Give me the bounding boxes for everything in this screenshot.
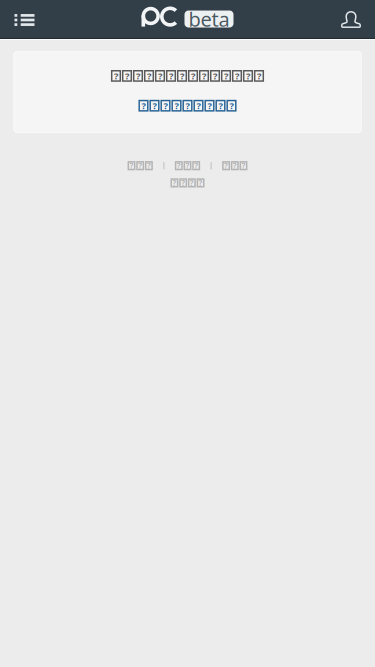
staticText: ? bbox=[198, 178, 202, 188]
staticText: ? bbox=[224, 70, 228, 82]
staticText: ? bbox=[241, 160, 245, 171]
staticText: ? bbox=[185, 160, 189, 171]
staticText: ? bbox=[181, 178, 185, 188]
staticText: ? bbox=[172, 178, 176, 188]
staticText: ? bbox=[180, 70, 184, 82]
button[interactable]: ? bbox=[175, 161, 200, 170]
staticText: ? bbox=[229, 99, 233, 112]
staticText: ? bbox=[257, 70, 261, 82]
staticText: ? bbox=[207, 99, 211, 112]
staticText: beta bbox=[188, 6, 229, 32]
staticText: ? bbox=[196, 99, 200, 112]
staticText: ? bbox=[169, 70, 173, 82]
staticText: ? bbox=[235, 70, 239, 82]
staticText: ? bbox=[152, 99, 156, 112]
staticText: ? bbox=[174, 99, 178, 112]
staticText: ? bbox=[141, 99, 145, 112]
staticText: ? bbox=[213, 70, 217, 82]
staticText: ? bbox=[224, 160, 228, 171]
button[interactable]: ? bbox=[170, 178, 204, 187]
staticText: ? bbox=[218, 99, 222, 112]
staticText: ? bbox=[190, 178, 194, 188]
staticText: ? bbox=[185, 99, 189, 112]
staticText: ? bbox=[194, 160, 198, 171]
staticText: ? bbox=[202, 70, 206, 82]
staticText: ? bbox=[163, 99, 167, 112]
staticText: ? bbox=[233, 160, 237, 171]
button[interactable]: ? bbox=[222, 161, 247, 170]
staticText: ? bbox=[158, 70, 162, 82]
staticText: ? bbox=[136, 70, 140, 82]
staticText: ? bbox=[246, 70, 250, 82]
staticText: ? bbox=[177, 160, 181, 171]
staticText: ? bbox=[147, 160, 151, 171]
button[interactable]: ? bbox=[138, 96, 236, 116]
staticText: ? bbox=[125, 70, 129, 82]
button[interactable]: Menu bbox=[0, 0, 50, 38]
staticText: ? bbox=[138, 160, 142, 171]
staticText: ? bbox=[147, 70, 151, 82]
staticText: ? bbox=[114, 70, 118, 82]
staticText: ? bbox=[129, 160, 133, 171]
staticText: ? bbox=[191, 70, 195, 82]
button[interactable]: ? bbox=[127, 161, 153, 170]
button[interactable]: Account bbox=[325, 0, 375, 38]
